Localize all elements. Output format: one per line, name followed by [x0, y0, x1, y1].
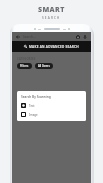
staticText: All Items — [38, 64, 50, 68]
staticText: Search... — [23, 35, 36, 39]
staticText: Search By Scanning — [21, 95, 51, 99]
button[interactable]: Camera search — [75, 34, 81, 40]
button[interactable]: All Items — [35, 63, 53, 69]
button[interactable]: Voice search — [82, 34, 88, 40]
button[interactable]: Text — [21, 103, 82, 108]
staticText: MAKE AN ADVANCED SEARCH — [29, 45, 79, 49]
staticText: Filters — [20, 64, 29, 68]
staticText: CATEGORIES — [17, 57, 36, 61]
staticText: SMART — [38, 5, 65, 15]
button[interactable]: Back — [15, 34, 21, 40]
staticText: SEARCH — [42, 16, 61, 20]
button[interactable]: Image — [21, 112, 82, 117]
staticText: Text — [29, 104, 35, 108]
staticText: Image — [29, 113, 38, 117]
button[interactable]: MAKE AN ADVANCED SEARCH — [12, 41, 91, 52]
button[interactable]: Filters — [17, 63, 32, 69]
